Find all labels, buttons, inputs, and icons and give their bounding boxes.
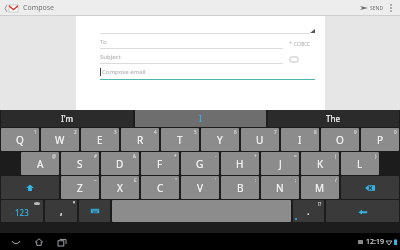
button[interactable]: Navigate up [3,5,19,12]
button[interactable]: D [101,152,139,175]
staticText: 8 [314,129,317,135]
staticText: Q [16,133,24,147]
button[interactable]: 123 [1,200,43,222]
staticText: P [377,133,384,147]
staticText: / [335,177,337,183]
button[interactable]: W [41,128,79,151]
staticText: * [174,153,177,159]
staticText: 1 [34,129,37,135]
staticText: # [94,153,97,159]
button[interactable]: V [181,176,219,199]
staticText: I'm [61,113,74,124]
staticText: Z [77,181,83,195]
button[interactable]: B [221,176,259,199]
staticText: + [289,40,294,47]
button[interactable]: A [21,152,59,175]
button[interactable]: C [141,176,179,199]
staticText: O [336,133,344,147]
staticText: 6 [234,129,237,135]
button[interactable]: + [289,40,310,47]
staticText: I [298,133,302,147]
staticText: CC/BCC [294,41,310,47]
staticText: 9 [354,129,357,135]
staticText: : [255,177,257,183]
staticText: 0 [394,129,397,135]
button[interactable]: N [261,176,299,199]
button[interactable]: S [61,152,99,175]
staticText: Y [217,133,223,147]
staticText: Compose [23,3,55,13]
button[interactable]: Y [201,128,239,151]
staticText: - [215,153,217,159]
staticText: ~ [94,177,97,183]
button[interactable]: I'm [1,110,133,127]
staticText: F [157,157,163,171]
staticText: T [177,133,183,147]
button[interactable]: Z [61,176,99,199]
button[interactable]: R [121,128,159,151]
staticText: 7 [274,129,277,135]
staticText: B [237,181,244,195]
button[interactable]: F [141,152,179,175]
staticText: ; [295,177,297,183]
staticText: Compose email [102,68,146,76]
staticText: 12:19 [366,237,384,247]
staticText: S [77,157,83,171]
staticText: ( [335,153,337,159]
staticText: , [60,204,63,218]
button[interactable]: Compose email [100,68,315,80]
button[interactable]: M [301,176,339,199]
button[interactable]: L [341,152,379,175]
staticText: & [133,153,137,159]
staticText: R [137,133,144,147]
button[interactable]: P [361,128,399,151]
button[interactable]: Recent apps [54,234,70,250]
staticText: U [256,133,264,147]
button[interactable]: K [301,152,339,175]
button[interactable]: Attach file [289,56,298,62]
button[interactable]: H [221,152,259,175]
button[interactable]: G [181,152,219,175]
staticText: G [196,157,204,171]
staticText: " [175,177,177,183]
button[interactable]: Q [1,128,39,151]
button[interactable]: E [81,128,119,151]
button[interactable] [100,22,315,34]
button[interactable]: Enter [326,200,399,222]
button[interactable]: To [100,38,283,49]
button[interactable]: J [261,152,299,175]
staticText: N [276,181,284,195]
staticText: ' [215,177,217,183]
staticText: 2 [74,129,77,135]
staticText: SEND [370,5,384,12]
button[interactable]: . [293,200,324,222]
button[interactable]: More options [386,0,396,16]
button[interactable]: , [45,200,77,222]
button[interactable]: I [281,128,319,151]
staticText: . [307,204,310,218]
button[interactable]: Delete [341,176,399,199]
button[interactable]: T [161,128,199,151]
button[interactable]: Subject [100,53,283,64]
staticText: 123 [15,207,29,218]
staticText: @ [52,153,57,159]
staticText: K [317,157,324,171]
button[interactable]: O [321,128,359,151]
staticText: £ [134,177,137,183]
staticText: Subject [100,53,121,61]
button[interactable]: SEND [358,0,386,16]
staticText: ) [375,153,377,159]
button[interactable]: U [241,128,279,151]
button[interactable]: I [135,110,266,127]
staticText: C [157,181,164,195]
button[interactable]: Switch keyboard [79,200,110,222]
staticText: W [55,133,65,147]
staticText: I [199,113,202,124]
button[interactable]: X [101,176,139,199]
staticText: V [197,181,203,195]
button[interactable]: Shift [1,176,59,199]
button[interactable]: Hide keyboard [8,234,24,250]
button[interactable]: The [268,110,399,127]
button[interactable]: Home [31,234,47,250]
